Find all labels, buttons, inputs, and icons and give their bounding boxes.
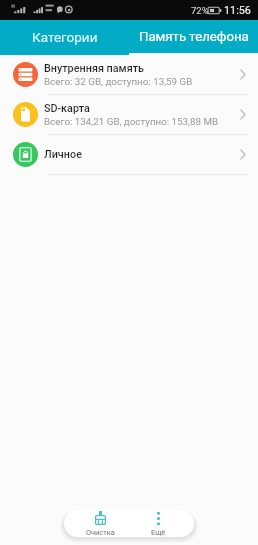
button[interactable]: SD-карта [0, 95, 258, 135]
staticText: Личное [44, 148, 82, 161]
staticText: Внутренняя память [44, 62, 145, 75]
button[interactable]: Личное [0, 135, 258, 175]
staticText: Всего: 134,21 GB, доступно: 153,88 MB [44, 116, 219, 127]
button[interactable]: Память телефона [129, 20, 258, 55]
button[interactable]: Внутренняя память [0, 55, 258, 95]
staticText: Очистка [86, 528, 115, 537]
staticText: Память телефона [139, 29, 249, 44]
staticText: Всего: 32 GB, доступно: 13,59 GB [44, 76, 193, 87]
staticText: Категории [32, 29, 98, 45]
button[interactable]: Категории [0, 20, 129, 55]
button[interactable]: Очистка [72, 510, 129, 537]
staticText: Ещё [151, 528, 166, 537]
staticText: 72% [191, 5, 209, 16]
button[interactable]: Ещё [129, 510, 187, 537]
staticText: 11:56 [224, 4, 251, 17]
staticText: SD-карта [44, 102, 90, 115]
